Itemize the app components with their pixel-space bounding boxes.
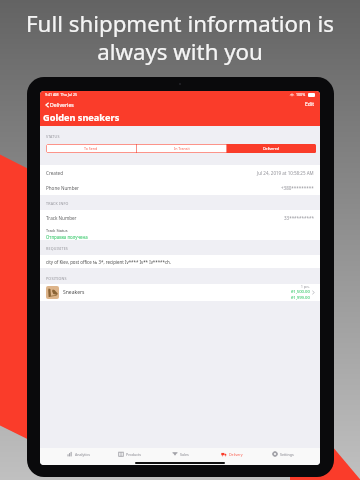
button[interactable]: Sneakers (40, 284, 320, 301)
staticText: Edit (305, 101, 314, 108)
staticText: Delivered (263, 146, 280, 151)
staticText: 100% (296, 92, 306, 97)
staticText: In Transit (174, 146, 190, 151)
staticText: Sneakers (63, 289, 85, 296)
button[interactable]: Products (104, 449, 155, 459)
staticText: Full shippment information is always wit… (0, 8, 360, 67)
staticText: Settings (280, 452, 294, 457)
staticText: 1 pcs. (301, 285, 310, 289)
staticText: Sales (180, 452, 189, 457)
staticText: Created (46, 170, 63, 176)
button[interactable]: Delivery (206, 449, 257, 459)
staticText: Track Number (46, 215, 77, 221)
button[interactable]: Analytics (53, 449, 104, 459)
staticText: Jul 24, 2019 at 10:58:25 AM (257, 170, 314, 176)
staticText: +380********* (281, 185, 314, 191)
staticText: Deliveries (50, 101, 74, 108)
staticText: TRACK INFO (46, 201, 69, 206)
staticText: 9:41 AM Thu Jul 25 (45, 92, 78, 97)
staticText: REQUISITES (46, 246, 69, 251)
staticText: Analytics (75, 452, 90, 457)
button[interactable]: Settings (257, 449, 308, 459)
staticText: Products (126, 452, 141, 457)
staticText: Golden sneakers (43, 111, 120, 124)
button[interactable]: In Transit (137, 144, 226, 153)
staticText: STATUS (46, 134, 60, 139)
button[interactable]: Deliveries (44, 100, 75, 109)
staticText: Отправка получена (46, 234, 88, 240)
staticText: Track Status (46, 228, 68, 233)
button[interactable]: Edit (303, 99, 316, 110)
button[interactable]: Delivered (227, 144, 316, 153)
button[interactable]: Sales (155, 449, 206, 459)
staticText: ₴1,500.00 (291, 289, 310, 295)
staticText: Phone Number (46, 185, 79, 191)
staticText: To Send (84, 146, 98, 151)
button[interactable]: To Send (46, 144, 136, 153)
staticText: 33********** (284, 215, 314, 221)
staticText: ₴1,999.00 (291, 295, 310, 301)
staticText: Delivery (229, 452, 243, 457)
staticText: POSITIONS (46, 276, 67, 281)
staticText: city of Kiev, post office № 3*, recipien… (46, 259, 171, 265)
